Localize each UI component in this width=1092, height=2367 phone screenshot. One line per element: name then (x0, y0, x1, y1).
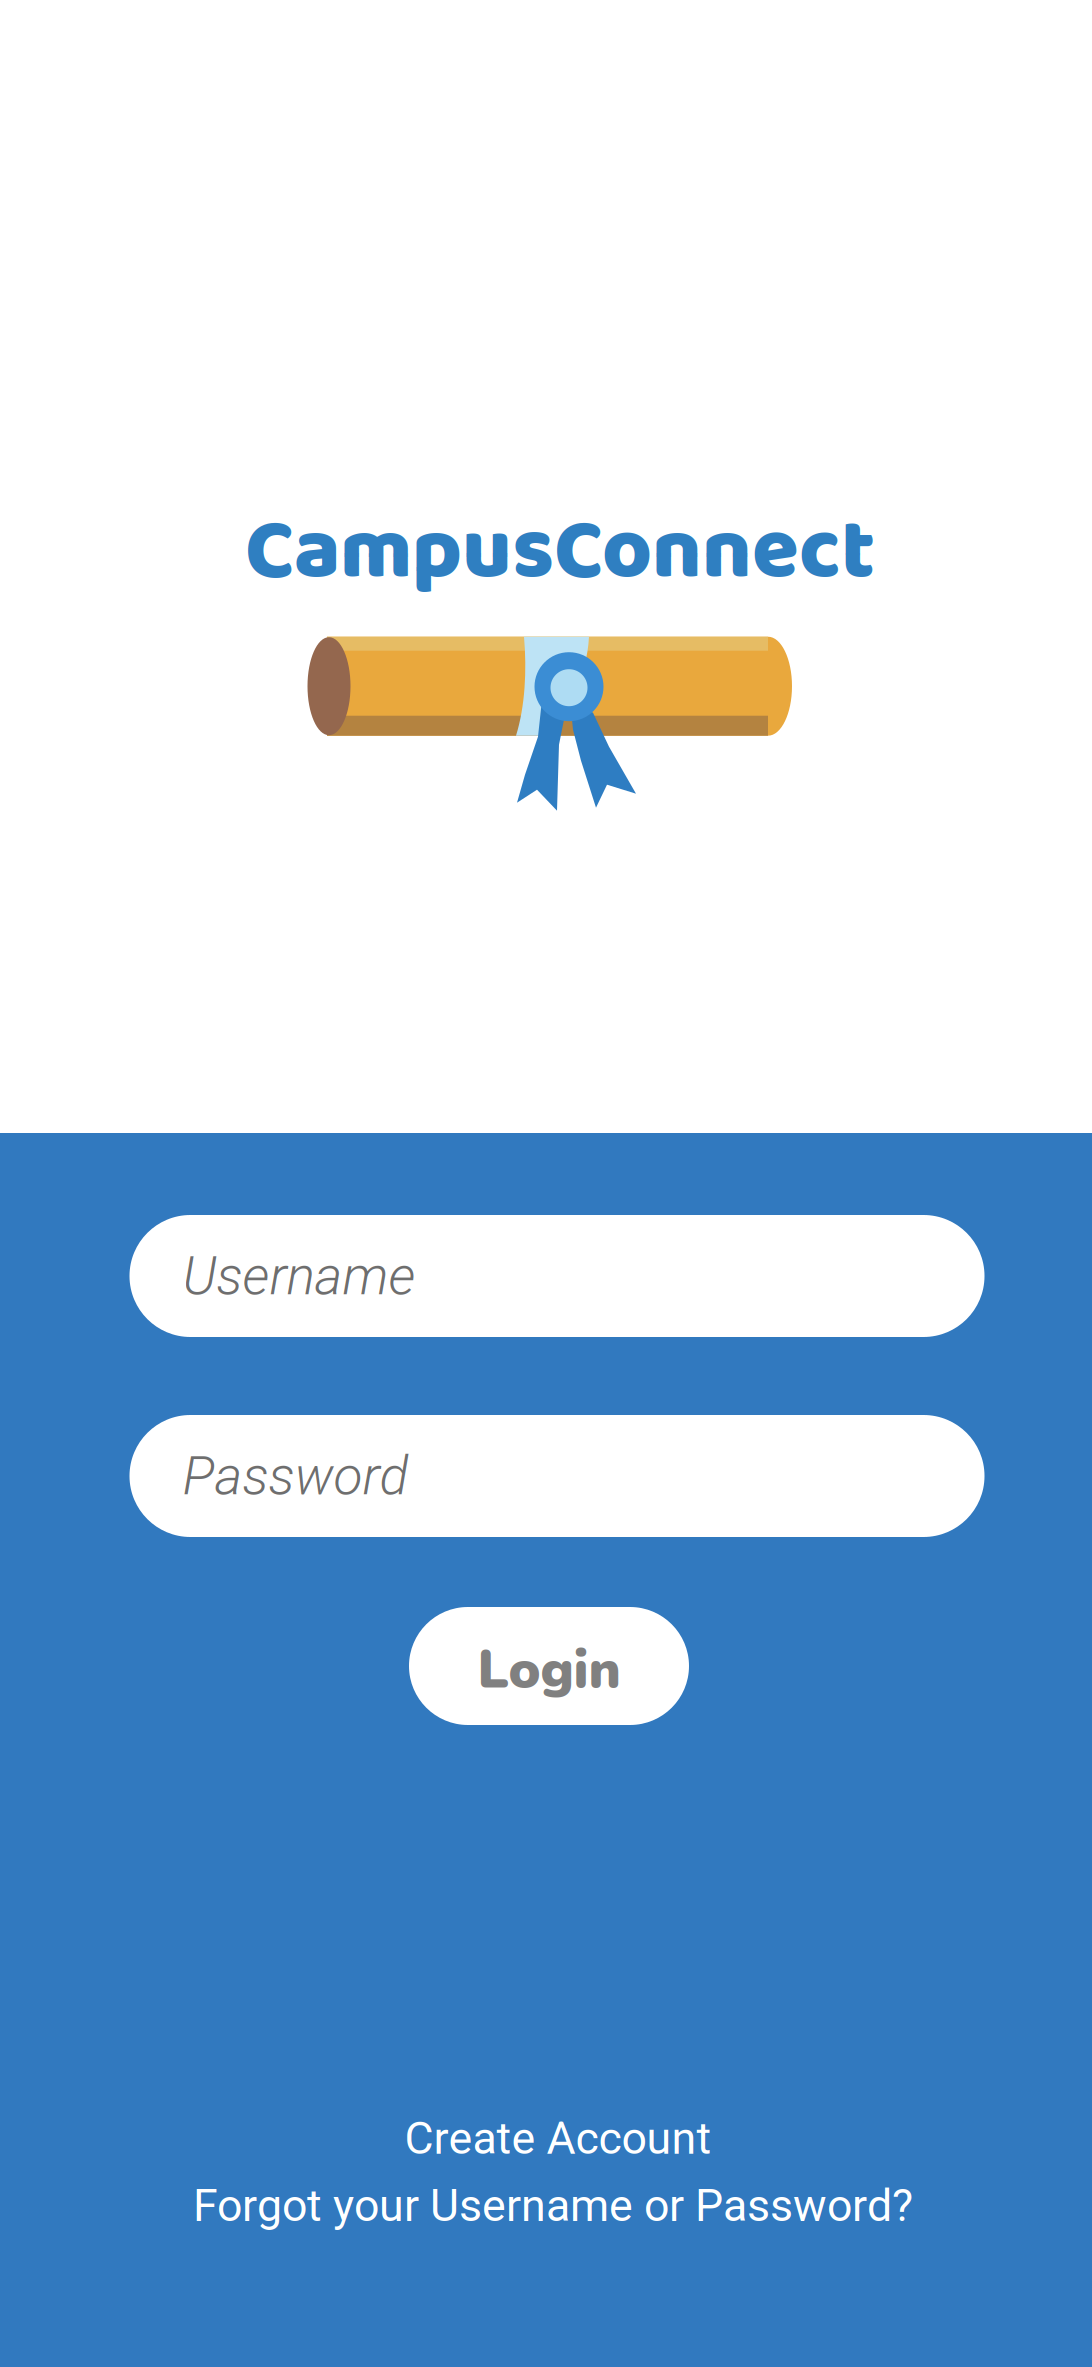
staticText: CampusConnect (245, 484, 875, 621)
staticText: Username (182, 1245, 415, 1307)
staticText: Create Account (404, 2112, 711, 2165)
button[interactable]: Create Account (404, 2112, 711, 2165)
staticText: Forgot your Username or Password? (193, 2180, 913, 2232)
staticText: Password (182, 1445, 408, 1507)
button[interactable]: Forgot your Username or Password? (193, 2180, 913, 2232)
staticText: Login (477, 1634, 620, 1706)
button[interactable]: Login (409, 1607, 689, 1725)
